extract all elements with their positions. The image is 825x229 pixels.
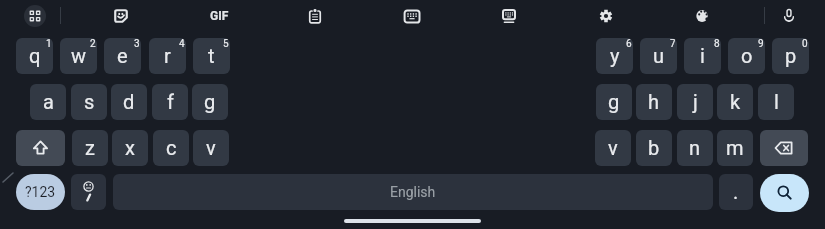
button[interactable]: k <box>717 84 753 120</box>
button[interactable]: e <box>104 38 141 74</box>
button[interactable]: Settings <box>592 2 620 30</box>
staticText: v <box>206 136 216 159</box>
staticText: v <box>608 136 618 159</box>
staticText: m <box>726 136 744 159</box>
staticText: 0 <box>802 38 808 50</box>
staticText: k <box>730 90 741 113</box>
button[interactable]: Voice input <box>775 2 803 30</box>
button[interactable]: GIF <box>205 2 233 30</box>
button[interactable]: Shift <box>16 130 65 166</box>
staticText: p <box>785 44 797 67</box>
button[interactable]: f <box>152 84 188 120</box>
staticText: d <box>123 90 135 113</box>
button[interactable]: b <box>636 130 672 166</box>
button[interactable]: Emoji <box>71 174 106 210</box>
staticText: q <box>29 44 41 67</box>
button[interactable]: z <box>72 130 108 166</box>
staticText: n <box>689 136 701 159</box>
staticText: GIF <box>210 9 229 23</box>
button[interactable]: Backspace <box>760 130 808 166</box>
button[interactable]: y <box>596 38 633 74</box>
staticText: b <box>648 136 660 159</box>
button[interactable]: x <box>112 130 148 166</box>
staticText: u <box>653 44 665 67</box>
staticText: a <box>43 90 54 113</box>
staticText: r <box>164 44 171 67</box>
staticText: w <box>71 44 87 67</box>
button[interactable]: Floating keyboard <box>495 2 523 30</box>
staticText: 2 <box>90 38 96 50</box>
button[interactable]: s <box>71 84 107 120</box>
staticText: e <box>117 44 128 67</box>
button[interactable]: Stickers <box>107 2 135 30</box>
staticText: 4 <box>179 38 185 50</box>
button[interactable]: q <box>16 38 53 74</box>
staticText: 9 <box>758 38 764 50</box>
staticText: f <box>167 90 174 113</box>
button[interactable]: d <box>111 84 147 120</box>
staticText: y <box>610 44 620 67</box>
staticText: 7 <box>670 38 676 50</box>
button[interactable]: v <box>595 130 631 166</box>
staticText: c <box>166 136 177 159</box>
staticText: 8 <box>714 38 720 50</box>
staticText: s <box>84 90 95 113</box>
staticText: x <box>125 136 135 159</box>
button[interactable]: g <box>596 84 632 120</box>
button[interactable]: u <box>640 38 677 74</box>
button[interactable]: a <box>30 84 66 120</box>
button[interactable]: Clipboard <box>301 2 329 30</box>
staticText: o <box>741 44 753 67</box>
button[interactable]: Period <box>719 174 753 210</box>
button[interactable]: Space <box>113 174 713 210</box>
staticText: i <box>700 44 705 67</box>
button[interactable]: r <box>149 38 186 74</box>
staticText: English <box>390 184 436 200</box>
button[interactable]: j <box>677 84 713 120</box>
button[interactable]: h <box>636 84 672 120</box>
staticText: l <box>774 90 779 113</box>
button[interactable]: Search <box>760 174 809 212</box>
staticText: t <box>208 44 215 67</box>
button[interactable]: Themes <box>688 2 716 30</box>
button[interactable]: l <box>758 84 794 120</box>
button[interactable]: p <box>772 38 809 74</box>
staticText: 6 <box>626 38 632 50</box>
staticText: . <box>733 180 739 203</box>
button[interactable]: t <box>193 38 230 74</box>
button[interactable]: g <box>192 84 228 120</box>
button[interactable]: i <box>684 38 721 74</box>
button[interactable]: Symbols <box>16 174 65 210</box>
staticText: 1 <box>46 38 52 50</box>
button[interactable]: w <box>60 38 97 74</box>
button[interactable]: c <box>153 130 189 166</box>
staticText: h <box>648 90 660 113</box>
button[interactable]: o <box>728 38 765 74</box>
staticText: 5 <box>223 38 229 50</box>
staticText: z <box>85 136 95 159</box>
button[interactable]: Resize keyboard <box>398 2 426 30</box>
staticText: g <box>204 90 216 113</box>
button[interactable]: m <box>717 130 753 166</box>
staticText: g <box>608 90 620 113</box>
button[interactable]: Toolbar <box>24 5 46 27</box>
staticText: j <box>693 90 698 113</box>
staticText: 3 <box>134 38 140 50</box>
button[interactable]: v <box>193 130 229 166</box>
button[interactable]: n <box>677 130 713 166</box>
staticText: ?123 <box>25 184 56 200</box>
